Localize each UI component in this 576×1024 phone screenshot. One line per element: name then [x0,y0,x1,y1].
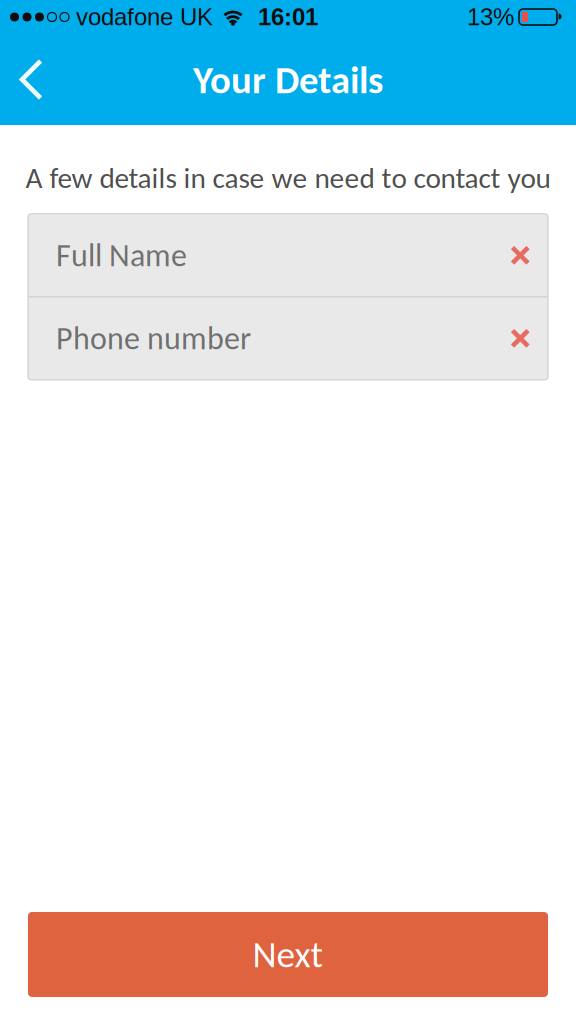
button[interactable]: Back [0,52,44,112]
button[interactable]: Next [28,912,548,997]
staticText: vodafone UK [76,4,213,30]
button[interactable]: Phone number [28,297,548,379]
button[interactable]: Clear [502,321,538,356]
staticText: A few details in case we need to contact… [25,160,550,196]
staticText: 13% [467,4,514,30]
staticText: Next [252,932,323,977]
staticText: Your Details [193,56,383,104]
staticText: 16:01 [258,4,318,30]
staticText: Full Name [56,236,187,275]
button[interactable]: Clear [502,238,538,273]
button[interactable]: Full Name [28,214,548,296]
staticText: Phone number [56,319,251,358]
